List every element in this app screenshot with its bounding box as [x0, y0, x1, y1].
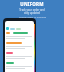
staticText: UNIFORM: [20, 1, 44, 7]
staticText: Track your order and stay updated: [19, 8, 45, 14]
staticText: Simple steps to manage: [19, 15, 46, 18]
